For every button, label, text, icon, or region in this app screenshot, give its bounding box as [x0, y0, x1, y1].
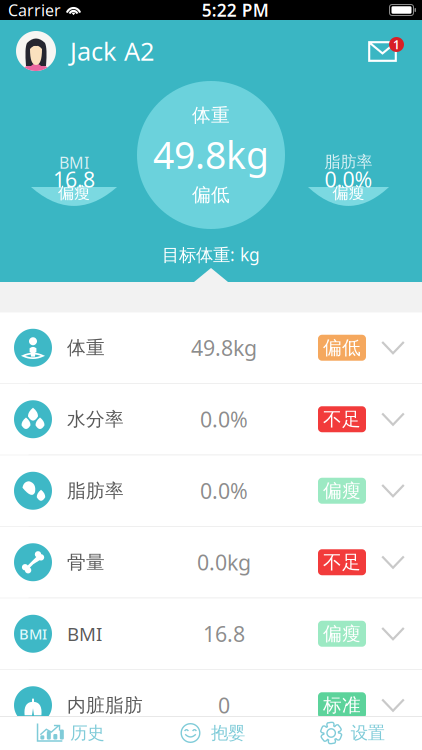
button[interactable]: BMI: [0, 598, 422, 669]
staticText: Carrier: [8, 0, 61, 21]
staticText: 内脏脂肪: [67, 694, 143, 717]
button[interactable]: Messages: [368, 37, 404, 65]
button[interactable]: 设置: [281, 716, 422, 750]
staticText: 49.8kg: [153, 130, 269, 179]
staticText: 目标体重: kg: [162, 243, 260, 266]
staticText: 偏瘦: [58, 183, 90, 203]
button[interactable]: 体重: [0, 312, 422, 383]
staticText: 不足: [323, 551, 361, 574]
staticText: 脂肪率: [67, 479, 124, 502]
staticText: 5:22 PM: [202, 0, 269, 21]
button[interactable]: 抱婴: [141, 716, 281, 750]
button[interactable]: 历史: [0, 716, 141, 750]
staticText: 0: [218, 691, 230, 719]
staticText: 体重: [192, 104, 230, 127]
staticText: 不足: [323, 408, 361, 431]
staticText: 偏低: [323, 336, 361, 359]
staticText: BMI: [19, 624, 47, 643]
staticText: Jack A2: [70, 34, 154, 68]
staticText: 偏瘦: [323, 479, 361, 502]
staticText: BMI: [59, 152, 89, 173]
staticText: 体重: [67, 336, 105, 359]
staticText: 1: [393, 36, 400, 52]
staticText: 0.0%: [324, 165, 372, 193]
staticText: 抱婴: [211, 722, 245, 744]
staticText: 偏低: [192, 183, 230, 206]
staticText: BMI: [67, 621, 102, 646]
staticText: 设置: [351, 722, 385, 744]
staticText: 0.0%: [200, 477, 248, 505]
staticText: 标准: [323, 694, 361, 717]
staticText: 0.0kg: [197, 548, 251, 576]
button[interactable]: 骨量: [0, 527, 422, 597]
staticText: 骨量: [67, 551, 105, 574]
staticText: 偏瘦: [332, 183, 364, 203]
staticText: 水分率: [67, 408, 124, 431]
button[interactable]: 水分率: [0, 384, 422, 454]
staticText: 16.8: [53, 165, 95, 193]
staticText: 历史: [70, 722, 104, 744]
staticText: 脂肪率: [324, 152, 372, 172]
staticText: 0.0%: [200, 405, 248, 433]
button[interactable]: 脂肪率: [0, 455, 422, 526]
button[interactable]: 内脏脂肪: [0, 670, 422, 740]
staticText: 16.8: [203, 620, 245, 648]
staticText: 49.8kg: [191, 334, 257, 362]
staticText: 偏瘦: [323, 622, 361, 645]
